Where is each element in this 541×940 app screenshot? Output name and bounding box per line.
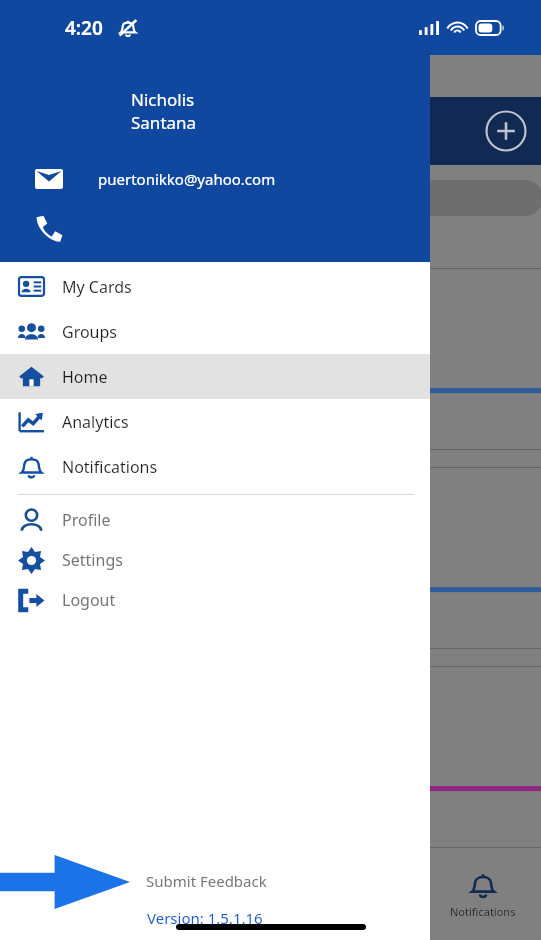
staticText: Groups [62, 321, 118, 343]
button[interactable]: Submit Feedback [0, 862, 430, 900]
button[interactable]: Home [0, 354, 430, 399]
staticText: Submit Feedback [146, 871, 267, 891]
button[interactable]: Add [485, 110, 527, 152]
staticText: Notifications [62, 456, 158, 478]
button[interactable]: Groups [0, 309, 430, 354]
button[interactable]: Notifications [435, 848, 531, 940]
staticText: Logout [62, 589, 116, 611]
staticText: Home [62, 366, 108, 388]
staticText: Analytics [62, 411, 129, 433]
button[interactable]: puertonikko@yahoo.com [0, 160, 430, 198]
button[interactable]: Settings [0, 540, 430, 580]
staticText: Santana [131, 111, 197, 134]
staticText: Version: 1.5.1.16 [147, 908, 263, 928]
staticText: Notifications [450, 904, 516, 919]
button[interactable]: Logout [0, 580, 430, 620]
staticText: Profile [62, 509, 111, 531]
button[interactable]: My Cards [0, 264, 430, 309]
staticText: puertonikko@yahoo.com [98, 169, 276, 189]
button[interactable]: Notifications [0, 444, 430, 489]
staticText: My Cards [62, 276, 132, 298]
button[interactable]: Profile [0, 500, 430, 540]
button[interactable]: Phone [0, 208, 430, 248]
staticText: Nicholis [131, 88, 195, 111]
staticText: 4:20 [65, 15, 103, 41]
button[interactable] [20, 666, 541, 848]
staticText: Settings [62, 549, 123, 571]
button[interactable] [20, 268, 541, 450]
button[interactable] [20, 467, 541, 649]
button[interactable] [18, 180, 541, 216]
button[interactable]: Analytics [0, 399, 430, 444]
